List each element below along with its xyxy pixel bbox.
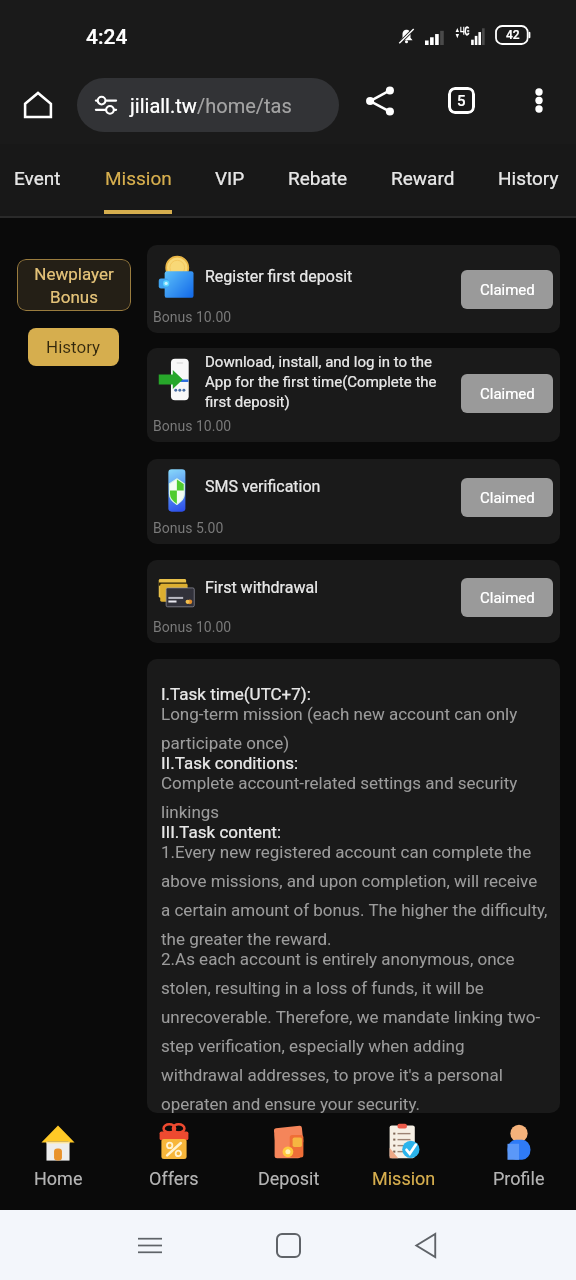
button[interactable]: First withdrawal (147, 560, 560, 643)
button[interactable]: SMS verification (147, 459, 560, 544)
button[interactable]: Deposit (231, 1113, 346, 1210)
staticText: Claimed (480, 589, 535, 607)
staticText: Bonus (153, 619, 196, 635)
staticText: Rebate (288, 167, 348, 189)
staticText: Bonus (153, 520, 196, 536)
staticText: 10.00 (196, 309, 232, 325)
button[interactable]: VIP (215, 144, 245, 216)
staticText: Download, install, and log in to the App… (205, 353, 451, 410)
staticText: First withdrawal (205, 578, 451, 597)
button[interactable]: Home (14, 81, 62, 129)
staticText: 42 (506, 28, 520, 42)
button[interactable]: Download, install, and log in to the App… (147, 348, 560, 442)
staticText: 10.00 (196, 619, 232, 635)
button[interactable]: Recent apps (120, 1215, 180, 1275)
button[interactable]: Home (258, 1215, 318, 1275)
staticText: Claimed (480, 385, 535, 403)
staticText: II.Task conditions: (161, 753, 299, 773)
staticText: Deposit (258, 1168, 320, 1189)
staticText: SMS verification (205, 477, 451, 496)
staticText: Claimed (480, 281, 535, 299)
staticText: Mission (372, 1168, 436, 1189)
staticText: Mission (105, 167, 172, 189)
button[interactable]: Claimed (461, 270, 553, 309)
staticText: Profile (493, 1168, 545, 1189)
staticText: /home/tas (197, 94, 292, 117)
button[interactable]: Claimed (461, 578, 553, 617)
button[interactable]: Claimed (461, 374, 553, 413)
staticText: I.Task time(UTC+7): (161, 684, 311, 704)
staticText: 10.00 (196, 418, 232, 434)
button[interactable]: Home (0, 1113, 116, 1210)
staticText: History (46, 337, 101, 357)
staticText: 1.Every new registered account can compl… (161, 842, 548, 949)
staticText: VIP (215, 167, 245, 189)
button[interactable]: Mission (104, 144, 172, 216)
staticText: Newplayer Bonus (17, 264, 131, 307)
staticText: Long-term mission (each new account can … (161, 704, 548, 753)
staticText: III.Task content: (161, 822, 282, 842)
button[interactable]: More options (519, 80, 559, 120)
staticText: jiliall.tw (130, 94, 197, 117)
button[interactable]: History (498, 144, 559, 216)
button[interactable]: Event (14, 144, 61, 216)
button[interactable]: History (28, 328, 119, 366)
button[interactable]: jiliall.tw (77, 78, 339, 132)
button[interactable]: Rebate (288, 144, 348, 216)
button[interactable]: Tabs (439, 78, 483, 122)
staticText: Home (34, 1168, 83, 1189)
button[interactable]: Reward (391, 144, 455, 216)
staticText: 4:24 (86, 25, 128, 50)
staticText: Register first deposit (205, 267, 451, 286)
staticText: 2.As each account is entirely anonymous,… (161, 949, 548, 1113)
button[interactable]: Register first deposit (147, 245, 560, 333)
button[interactable]: Newplayer Bonus (17, 259, 131, 311)
staticText: Reward (391, 167, 455, 189)
staticText: History (498, 167, 559, 189)
staticText: 5.00 (196, 520, 224, 536)
button[interactable]: Profile (461, 1113, 576, 1210)
staticText: Bonus (153, 309, 196, 325)
button[interactable]: Mission (346, 1113, 461, 1210)
staticText: Complete account-related settings and se… (161, 773, 548, 822)
button[interactable]: Share (356, 77, 404, 125)
button[interactable]: Back (396, 1215, 456, 1275)
staticText: Event (14, 167, 61, 189)
button[interactable]: Offers (116, 1113, 231, 1210)
staticText: Bonus (153, 418, 196, 434)
button[interactable]: Claimed (461, 478, 553, 517)
staticText: Offers (149, 1168, 199, 1189)
staticText: 5 (457, 92, 466, 110)
staticText: Claimed (480, 489, 535, 507)
